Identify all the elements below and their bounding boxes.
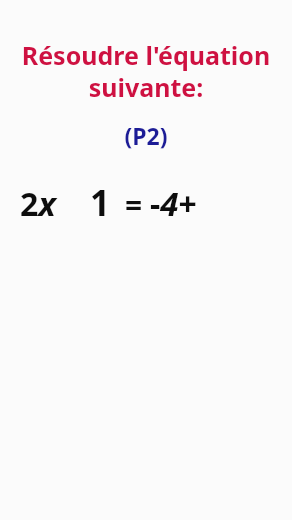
staticText: 1 — [90, 179, 111, 227]
button[interactable]: (P2) — [0, 120, 292, 151]
staticText: = -4+ — [125, 181, 197, 226]
button[interactable]: 2x — [20, 179, 280, 227]
staticText: 2x — [20, 181, 56, 226]
button[interactable]: Résoudre l'équation suivante: — [8, 38, 284, 104]
